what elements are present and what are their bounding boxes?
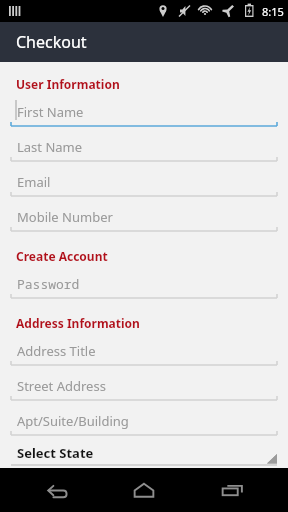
button[interactable]: Checkout: [0, 22, 288, 62]
staticText: Password: [17, 275, 80, 293]
button[interactable]: First Name: [0, 96, 288, 131]
button[interactable]: Home: [112, 468, 176, 512]
button[interactable]: Password: [0, 268, 288, 303]
staticText: Mobile Number: [17, 208, 113, 226]
staticText: Address Title: [17, 342, 96, 360]
button[interactable]: Apt/Suite/Building: [0, 405, 288, 440]
button[interactable]: Address Title: [0, 335, 288, 370]
staticText: Apt/Suite/Building: [17, 412, 129, 430]
staticText: 8:15: [262, 4, 284, 19]
button[interactable]: Email: [0, 166, 288, 201]
button[interactable]: Recent apps: [200, 468, 264, 512]
button[interactable]: Back: [24, 468, 88, 512]
staticText: Email: [17, 173, 51, 191]
staticText: Street Address: [17, 377, 106, 395]
staticText: Select State: [17, 444, 94, 462]
staticText: First Name: [17, 103, 84, 121]
staticText: Checkout: [16, 31, 87, 53]
staticText: Create Account: [16, 248, 108, 264]
button[interactable]: Last Name: [0, 131, 288, 166]
staticText: User Information: [16, 76, 120, 92]
button[interactable]: Select State: [0, 440, 288, 468]
button[interactable]: Mobile Number: [0, 201, 288, 236]
staticText: Last Name: [17, 138, 83, 156]
staticText: Address Information: [16, 315, 140, 331]
button[interactable]: Street Address: [0, 370, 288, 405]
